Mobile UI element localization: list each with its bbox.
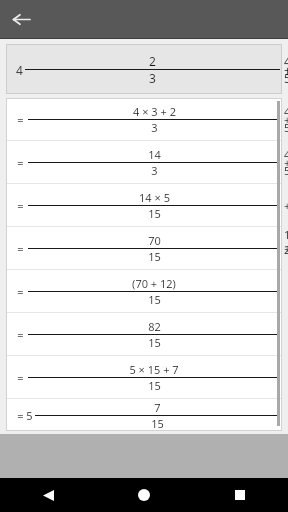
staticText: 15	[148, 335, 161, 350]
button[interactable]: =	[6, 399, 282, 431]
staticText: =	[17, 370, 24, 385]
button[interactable]: Back	[0, 478, 96, 512]
staticText: 3	[149, 70, 156, 86]
staticText: 82	[148, 319, 161, 334]
staticText: (70 + 12)	[132, 276, 176, 291]
button[interactable]: =	[6, 356, 282, 398]
staticText: 15	[151, 416, 164, 431]
button[interactable]: =	[6, 98, 282, 140]
staticText: 7	[154, 400, 161, 415]
staticText: 2	[149, 53, 156, 69]
staticText: 70	[148, 233, 161, 248]
staticText: 3	[151, 120, 158, 135]
staticText: 15	[148, 378, 161, 393]
button[interactable]: Home	[96, 478, 192, 512]
staticText: =	[17, 198, 24, 213]
staticText: 4 × 3 + 2	[133, 104, 176, 119]
button[interactable]: Recents	[192, 478, 288, 512]
button[interactable]: =	[6, 270, 282, 312]
staticText: 14	[148, 147, 161, 162]
staticText: =	[17, 408, 24, 423]
staticText: 14 × 5	[139, 190, 170, 205]
staticText: =	[17, 284, 24, 299]
staticText: 15	[148, 292, 161, 307]
staticText: 4	[16, 62, 23, 78]
button[interactable]: =	[6, 227, 282, 269]
button[interactable]: =	[6, 313, 282, 355]
staticText: =	[17, 327, 24, 342]
staticText: 15	[148, 249, 161, 264]
staticText: =	[17, 241, 24, 256]
button[interactable]: =	[6, 184, 282, 226]
staticText: =	[17, 112, 24, 127]
staticText: 5	[26, 408, 33, 423]
staticText: 15	[148, 206, 161, 221]
staticText: 5 × 15 + 7	[129, 362, 179, 377]
button[interactable]: =	[6, 141, 282, 183]
staticText: 3	[151, 163, 158, 178]
button[interactable]: 4	[6, 44, 282, 94]
staticText: =	[17, 155, 24, 170]
button[interactable]: Back	[5, 3, 37, 35]
